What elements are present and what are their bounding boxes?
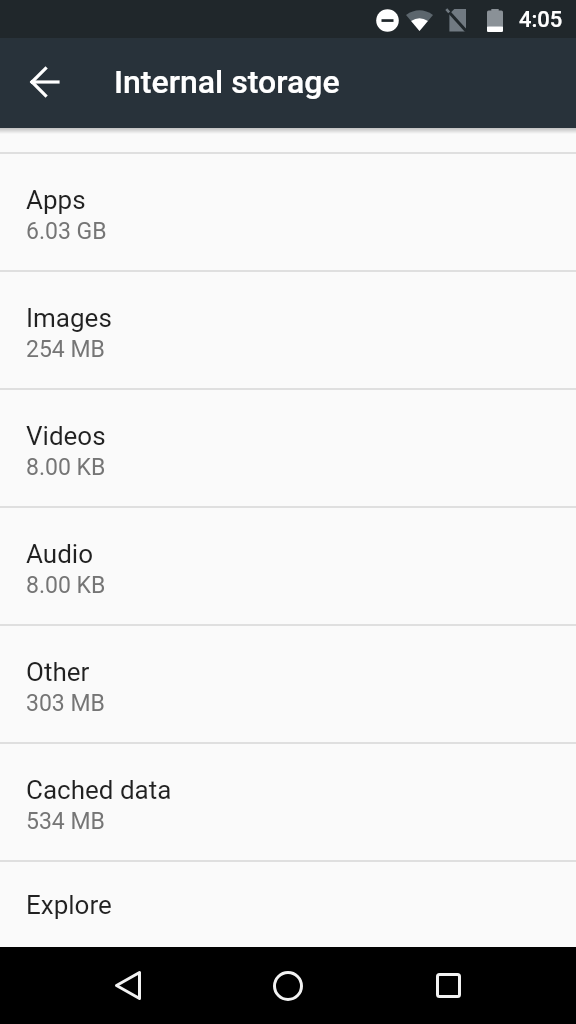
button[interactable]: Apps [0,152,576,270]
staticText: 303 MB [26,690,105,717]
button[interactable] [256,947,320,1024]
button[interactable]: Cached data [0,742,576,860]
staticText: Cached data [26,775,172,805]
staticText: 8.00 KB [26,572,106,599]
button[interactable]: Audio [0,506,576,624]
staticText: 534 MB [26,808,105,835]
button[interactable]: Other [0,624,576,742]
staticText: Audio [26,539,93,569]
staticText: Internal storage [114,63,340,101]
button[interactable] [96,947,160,1024]
button[interactable]: Images [0,270,576,388]
staticText: 4:05 [519,7,563,33]
button[interactable] [0,51,64,115]
staticText: Apps [26,185,86,215]
staticText: 8.00 KB [26,454,106,481]
staticText: Images [26,303,112,333]
button[interactable]: Videos [0,388,576,506]
button[interactable]: Explore [0,860,576,947]
button[interactable] [416,947,480,1024]
staticText: 6.03 GB [26,218,107,245]
staticText: Other [26,657,90,687]
staticText: Videos [26,421,106,451]
staticText: Explore [26,890,112,920]
staticText: 254 MB [26,336,105,363]
